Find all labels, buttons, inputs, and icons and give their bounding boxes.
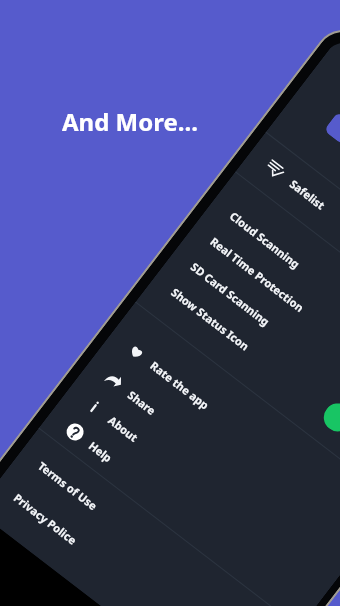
button[interactable]: Cloud Scanning: [204, 187, 340, 413]
button[interactable]: Show Status Icon: [145, 263, 340, 489]
button[interactable]: Terms of Use: [12, 437, 293, 606]
staticText: Privacy Police: [11, 490, 80, 548]
staticText: Help: [86, 438, 116, 466]
button[interactable]: SD Card Scanning: [165, 238, 340, 464]
staticText: About: [105, 413, 142, 445]
button[interactable]: Scan: [318, 398, 340, 437]
staticText: Real Time Protection: [207, 234, 307, 315]
staticText: Safelist: [287, 176, 329, 213]
staticText: Terms of Use: [35, 458, 101, 513]
button[interactable]: Share: [80, 349, 340, 575]
staticText: Cloud Scanning: [227, 208, 304, 272]
button[interactable]: Help: [41, 400, 321, 606]
button[interactable]: Privacy Police: [0, 469, 268, 606]
button[interactable]: Safelist: [242, 138, 340, 364]
button[interactable]: About: [60, 374, 340, 600]
staticText: Rate the app: [147, 358, 212, 412]
button[interactable]: Rate the app: [102, 320, 340, 545]
staticText: SD Card Scanning: [188, 259, 273, 329]
button[interactable]: Real Time Protection: [184, 212, 340, 438]
staticText: Share: [125, 387, 159, 419]
staticText: Show Status Icon: [168, 284, 252, 354]
staticText: And More...: [62, 105, 199, 138]
